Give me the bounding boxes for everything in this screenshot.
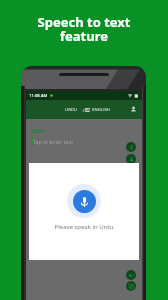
button[interactable]: Swap languages bbox=[82, 105, 88, 114]
button[interactable]: Speak bbox=[126, 142, 136, 152]
staticText: Please speak in Urdu bbox=[29, 223, 139, 231]
button[interactable]: URDU bbox=[65, 105, 78, 114]
staticText: Tap to enter text bbox=[33, 138, 74, 145]
button[interactable]: Microphone bbox=[67, 184, 101, 218]
staticText: ENGLISH bbox=[92, 107, 111, 113]
staticText: URDU bbox=[65, 107, 78, 113]
button[interactable]: Keyboard bbox=[126, 154, 136, 164]
button[interactable]: Account bbox=[128, 100, 139, 119]
button[interactable]: Play audio bbox=[126, 270, 136, 280]
staticText: Speech to text feature bbox=[0, 13, 168, 45]
button[interactable]: Menu bbox=[29, 100, 145, 119]
staticText: 11:08 AM bbox=[29, 93, 48, 99]
button[interactable]: ENGLISH bbox=[92, 105, 111, 114]
staticText: URDU bbox=[32, 128, 45, 134]
button[interactable]: Copy bbox=[126, 281, 136, 291]
